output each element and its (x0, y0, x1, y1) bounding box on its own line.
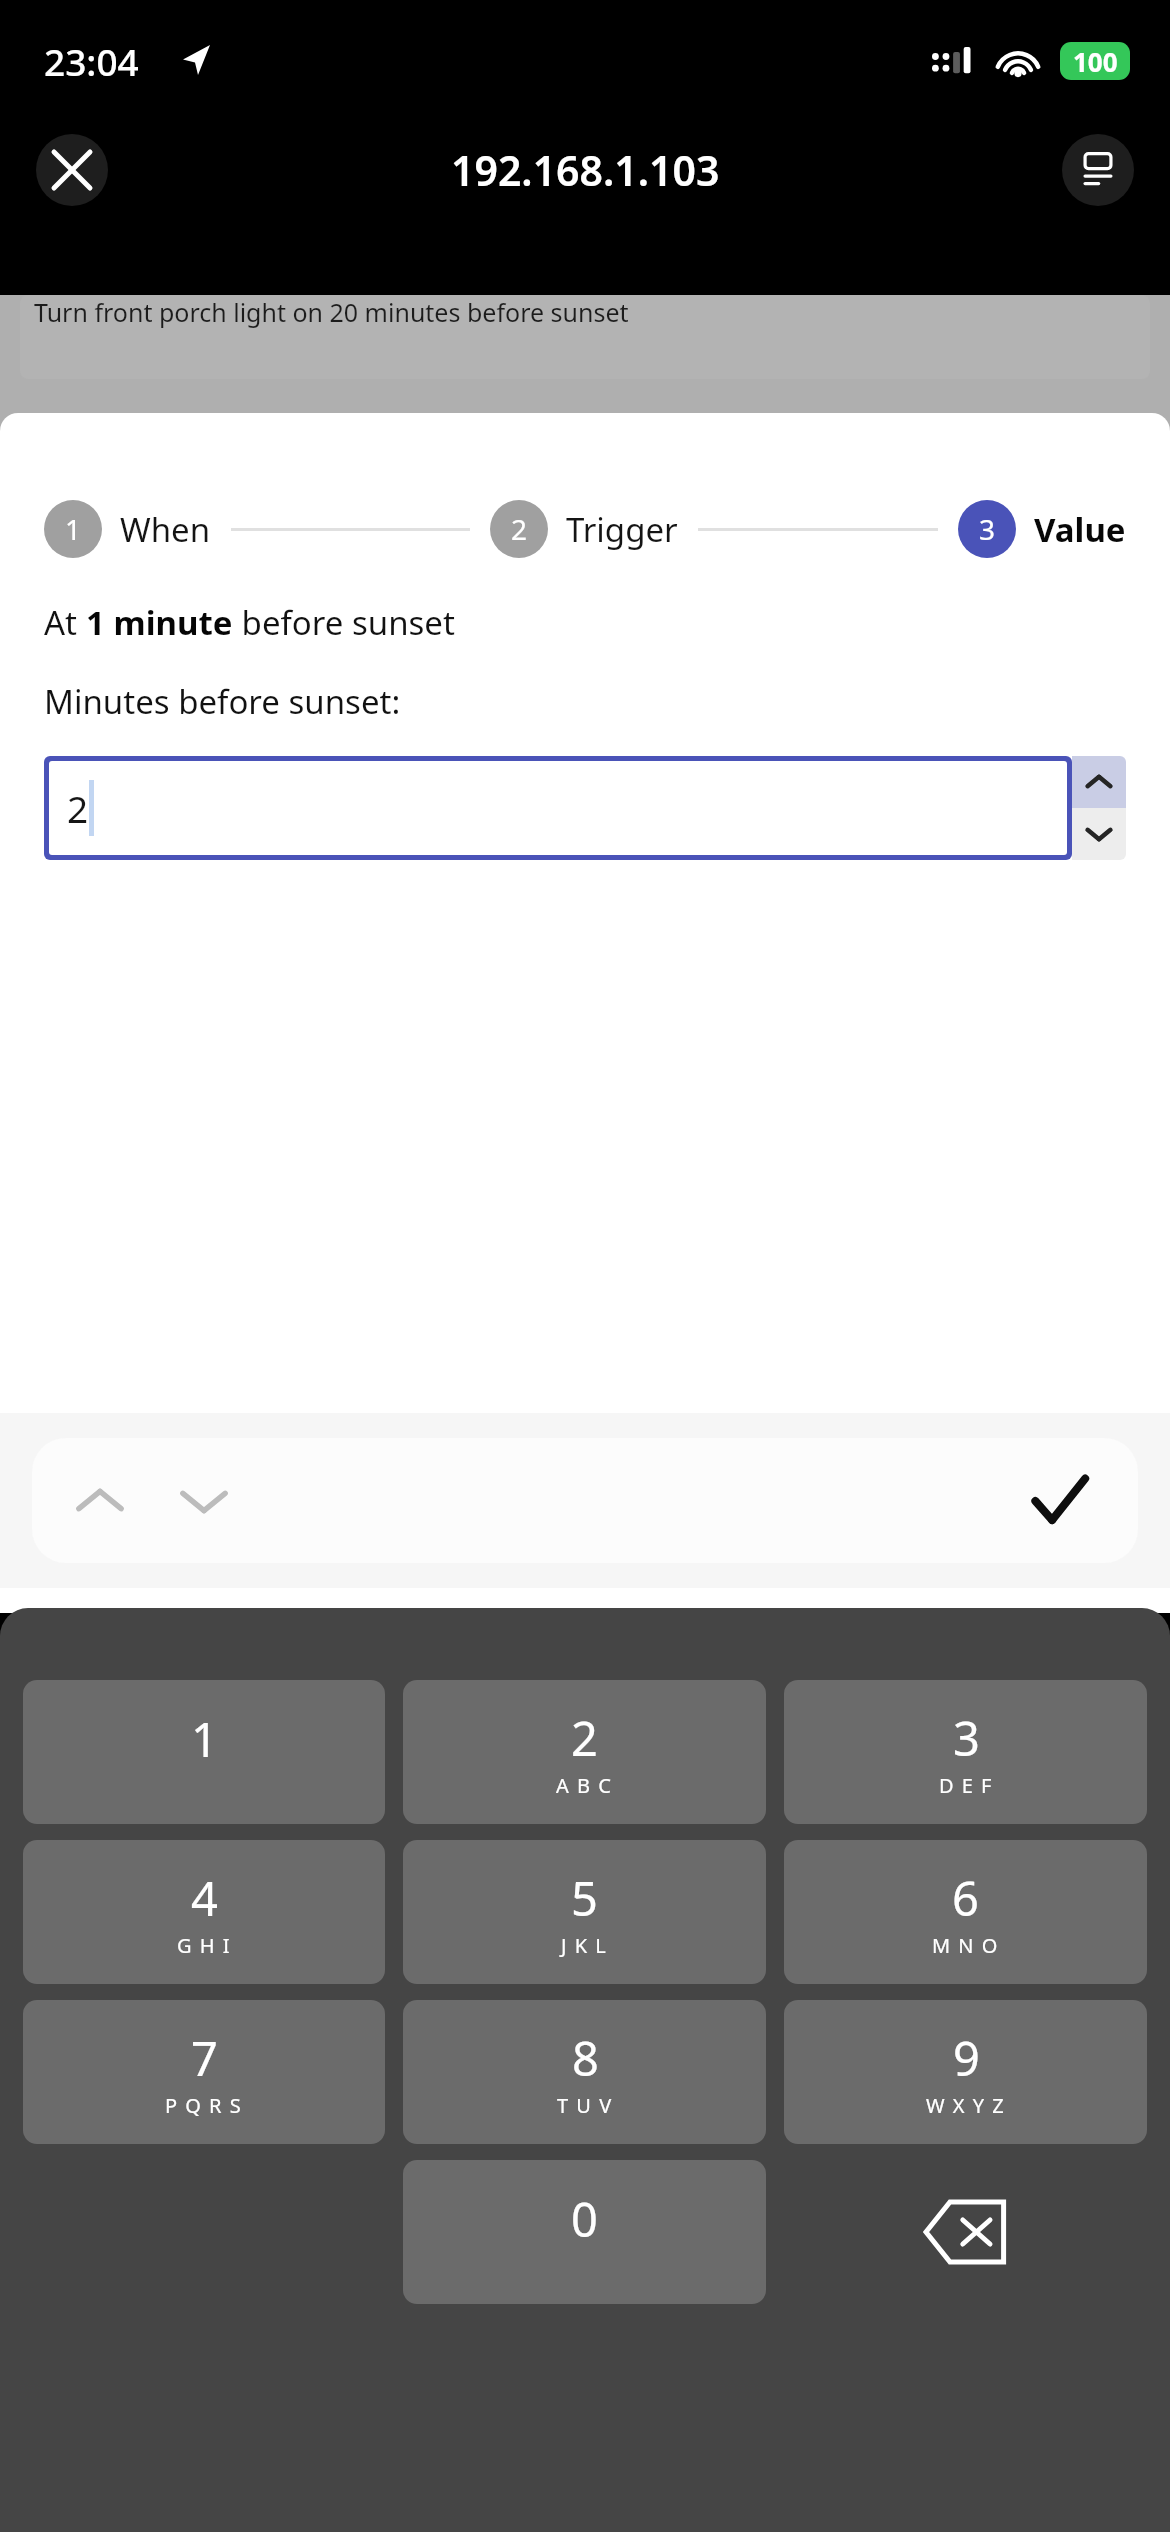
staticText: 2 (67, 783, 89, 833)
staticText: Turn front porch light on 20 minutes bef… (34, 295, 629, 329)
staticText: Value (1034, 507, 1126, 552)
staticText: G H I (177, 1932, 232, 1959)
staticText: 5 (571, 1866, 598, 1930)
button[interactable]: 4 (23, 1840, 385, 1984)
staticText: At (44, 600, 86, 645)
staticText: 3 (979, 510, 996, 548)
staticText: P Q R S (165, 2092, 243, 2119)
button[interactable]: 3 (958, 500, 1016, 558)
staticText: J K L (561, 1932, 608, 1959)
staticText: Trigger (566, 507, 678, 552)
button[interactable]: Previous field (62, 1463, 138, 1539)
button[interactable]: Reader view (1062, 134, 1134, 206)
staticText: 23:04 (44, 36, 139, 86)
button[interactable]: 5 (403, 1840, 766, 1984)
staticText: 6 (952, 1866, 979, 1930)
button[interactable]: 9 (784, 2000, 1147, 2144)
button[interactable]: 6 (784, 1840, 1147, 1984)
staticText: M N O (932, 1932, 999, 1959)
staticText: 9 (953, 2026, 980, 2090)
staticText: Minutes before sunset: (44, 679, 401, 724)
button[interactable]: 2 (403, 1680, 766, 1824)
staticText: 100 (1073, 44, 1118, 79)
button[interactable]: 0 (403, 2160, 766, 2304)
staticText: A B C (556, 1772, 613, 1799)
button[interactable]: Decrease (1072, 808, 1126, 860)
button[interactable]: Done (1022, 1463, 1098, 1539)
button[interactable]: 2 (49, 761, 1067, 855)
button[interactable]: 1 (44, 500, 102, 558)
staticText: D E F (939, 1772, 993, 1799)
button[interactable]: Next field (166, 1463, 242, 1539)
staticText: 2 (511, 510, 528, 548)
staticText: 3 (953, 1706, 980, 1770)
button[interactable]: 8 (403, 2000, 766, 2144)
button[interactable]: Close (36, 134, 108, 206)
staticText: 1 (191, 1707, 218, 1771)
button[interactable]: 1 (23, 1680, 385, 1824)
staticText: 8 (572, 2026, 599, 2090)
button[interactable]: 3 (784, 1680, 1147, 1824)
staticText: 7 (191, 2026, 218, 2090)
button[interactable]: Delete (784, 2160, 1147, 2304)
staticText: T U V (557, 2092, 613, 2119)
button[interactable]: Increase (1072, 756, 1126, 808)
staticText: 4 (191, 1866, 218, 1930)
staticText: 1 (65, 510, 82, 548)
button[interactable]: 7 (23, 2000, 385, 2144)
staticText: 192.168.1.103 (451, 142, 720, 198)
staticText: before sunset (233, 600, 455, 645)
staticText: 2 (571, 1706, 598, 1770)
button[interactable]: 2 (490, 500, 548, 558)
staticText: When (120, 507, 211, 552)
staticText: 1 minute (86, 600, 233, 645)
staticText: 0 (571, 2187, 598, 2251)
staticText: W X Y Z (926, 2092, 1006, 2119)
